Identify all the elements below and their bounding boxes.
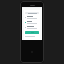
button[interactable] xyxy=(25,31,39,34)
button[interactable] xyxy=(25,26,39,29)
button[interactable]: Email field xyxy=(25,12,39,14)
button[interactable] xyxy=(25,21,39,24)
button[interactable] xyxy=(25,16,39,19)
